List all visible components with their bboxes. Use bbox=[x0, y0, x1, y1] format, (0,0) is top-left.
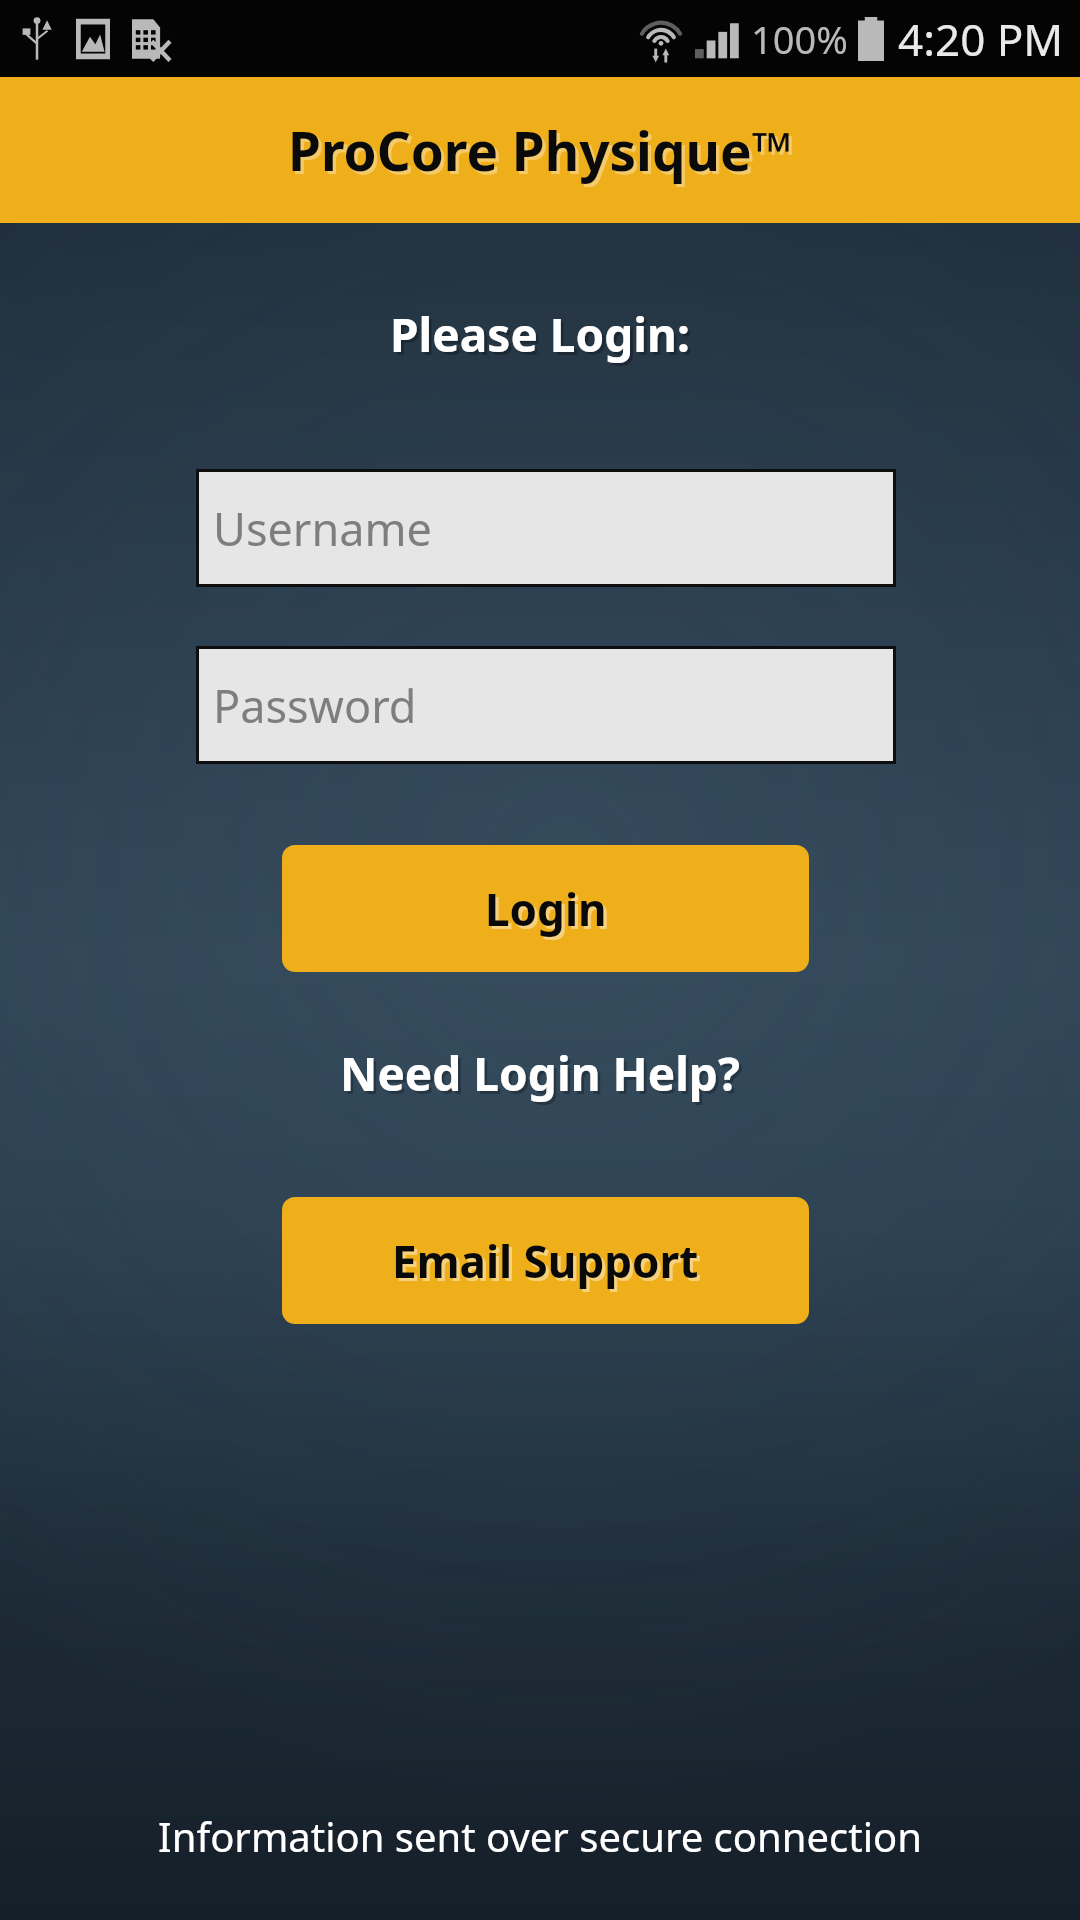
staticText: Please Login: bbox=[393, 306, 693, 369]
other: Wi-Fi connected bbox=[637, 15, 685, 63]
other: Battery full bbox=[858, 17, 884, 61]
button[interactable]: Login bbox=[282, 845, 809, 972]
staticText: 4:20 PM bbox=[898, 9, 1064, 69]
staticText: Login bbox=[488, 882, 610, 942]
staticText: Login bbox=[485, 879, 607, 939]
other: No SIM card bbox=[132, 17, 170, 61]
staticText: Email Support bbox=[392, 1231, 699, 1291]
staticText: Information sent over secure connection bbox=[158, 1809, 922, 1863]
staticText: 100% bbox=[751, 13, 848, 65]
staticText: Need Login Help? bbox=[343, 1045, 743, 1108]
staticText: Please Login: bbox=[390, 303, 690, 366]
staticText: Username bbox=[213, 498, 432, 559]
staticText: ProCore Physique™ bbox=[291, 117, 796, 189]
button[interactable]: Username bbox=[199, 472, 893, 584]
other: USB connected bbox=[22, 16, 52, 62]
other: Mobile signal bbox=[695, 18, 739, 60]
staticText: Email Support bbox=[395, 1234, 702, 1294]
staticText: Need Login Help? bbox=[340, 1042, 740, 1105]
staticText: Password bbox=[213, 675, 417, 736]
staticText: ProCore Physique™ bbox=[288, 114, 793, 186]
button[interactable]: Password bbox=[199, 649, 893, 761]
other: Screenshot captured bbox=[76, 17, 110, 61]
button[interactable]: Email Support bbox=[282, 1197, 809, 1324]
